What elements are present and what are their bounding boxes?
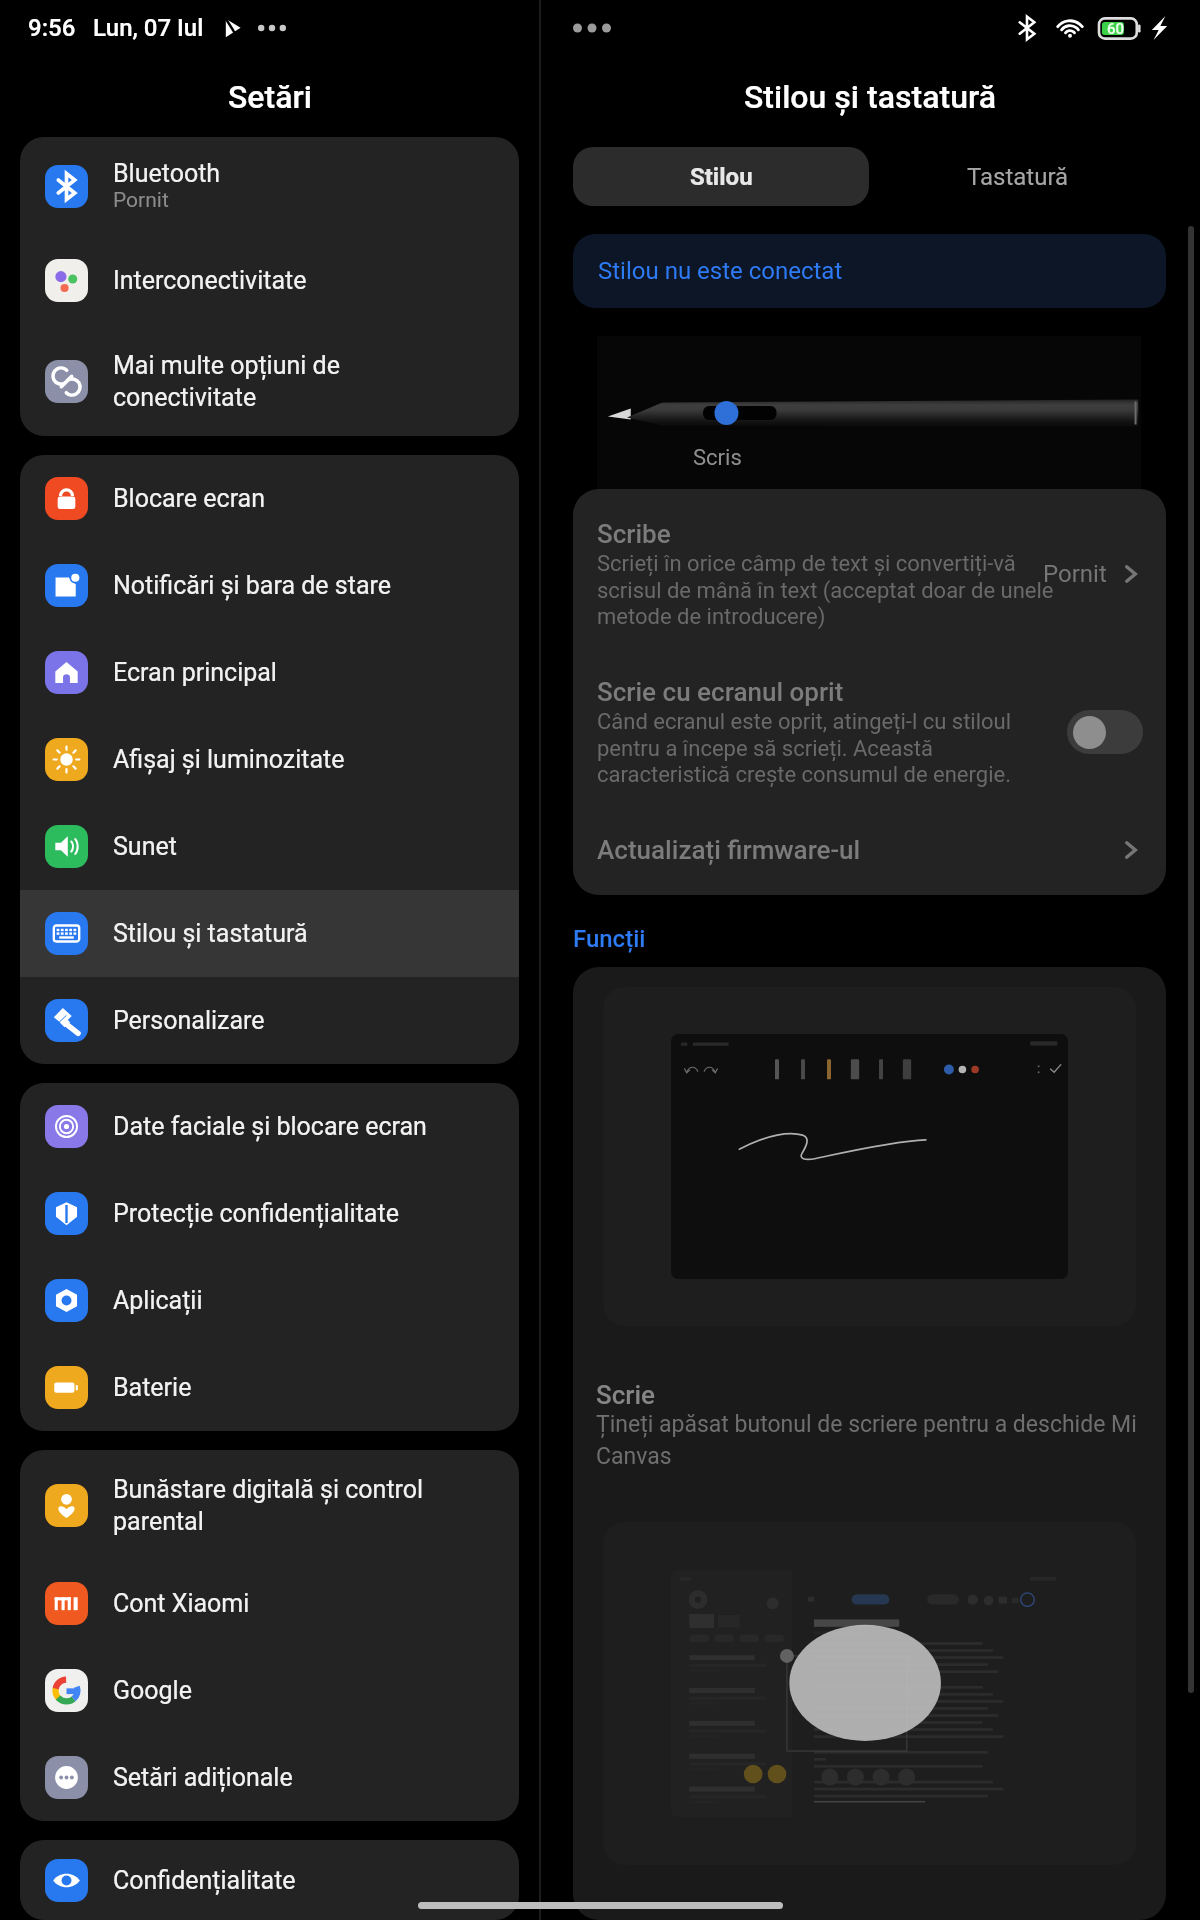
staticText: Scrieți în orice câmp de text și convert…: [597, 551, 1069, 629]
button[interactable]: Stilou nu este conectat: [573, 234, 1166, 308]
button[interactable]: Aplicații: [20, 1257, 519, 1344]
staticText: Afișaj și luminozitate: [113, 745, 345, 774]
staticText: Confidențialitate: [113, 1866, 296, 1895]
staticText: Scrie cu ecranul oprit: [597, 677, 844, 707]
staticText: Date faciale și blocare ecran: [113, 1112, 427, 1141]
staticText: Setări: [228, 78, 312, 116]
staticText: Aplicații: [113, 1286, 203, 1315]
staticText: Când ecranul este oprit, atingeți-l cu s…: [597, 709, 1069, 787]
staticText: Actualizați firmware-ul: [597, 835, 861, 865]
button[interactable]: Cont Xiaomi: [20, 1560, 519, 1647]
button[interactable]: Scrie cu ecranul oprit: [1067, 710, 1143, 754]
staticText: Blocare ecran: [113, 484, 266, 513]
staticText: Stilou și tastatură: [744, 78, 997, 116]
button[interactable]: Notificări și bara de stare: [20, 542, 519, 629]
button[interactable]: Tastatură: [869, 147, 1166, 206]
button[interactable]: Bluetooth: [20, 137, 519, 235]
button[interactable]: Bunăstare digitală și control parental: [20, 1450, 519, 1560]
staticText: Funcții: [573, 925, 646, 953]
staticText: Mai multe opțiuni de conectivitate: [113, 351, 340, 412]
button[interactable]: Stilou: [573, 147, 869, 206]
button[interactable]: Blocare ecran: [20, 455, 519, 542]
button[interactable]: Protecție confidențialitate: [20, 1170, 519, 1257]
button[interactable]: Confidențialitate: [20, 1840, 519, 1920]
staticText: Stilou: [690, 163, 753, 191]
staticText: Interconectivitate: [113, 266, 307, 295]
button[interactable]: Actualizați firmware-ul: [573, 811, 1166, 889]
button[interactable]: Google: [20, 1647, 519, 1734]
staticText: Cont Xiaomi: [113, 1589, 250, 1618]
button[interactable]: Setări adiționale: [20, 1734, 519, 1821]
button[interactable]: Interconectivitate: [20, 235, 519, 326]
staticText: Bluetooth: [113, 159, 221, 188]
button[interactable]: Scrie cu ecranul oprit: [573, 653, 1166, 811]
staticText: Scris: [693, 445, 742, 471]
staticText: Stilou nu este conectat: [598, 257, 843, 285]
staticText: Google: [113, 1676, 192, 1705]
staticText: Țineți apăsat butonul de scriere pentru …: [596, 1411, 1156, 1470]
button[interactable]: Afișaj și luminozitate: [20, 716, 519, 803]
button[interactable]: Sunet: [20, 803, 519, 890]
staticText: Setări adiționale: [113, 1763, 293, 1792]
button[interactable]: Ecran principal: [20, 629, 519, 716]
staticText: Pornit: [1043, 560, 1107, 588]
staticText: Bunăstare digitală și control parental: [113, 1475, 424, 1536]
button[interactable]: Baterie: [20, 1344, 519, 1431]
staticText: Scrie: [596, 1380, 656, 1410]
button[interactable]: Mai multe opțiuni de conectivitate: [20, 326, 519, 436]
staticText: Ecran principal: [113, 658, 277, 687]
staticText: Stilou și tastatură: [113, 919, 308, 948]
staticText: Sunet: [113, 832, 177, 861]
button[interactable]: Scribe: [573, 495, 1166, 653]
staticText: Lun, 07 Iul: [93, 14, 204, 42]
button[interactable]: Stilou și tastatură: [20, 890, 519, 977]
staticText: 9:56: [28, 14, 76, 42]
button[interactable]: Personalizare: [20, 977, 519, 1064]
staticText: Protecție confidențialitate: [113, 1199, 399, 1228]
staticText: Personalizare: [113, 1006, 265, 1035]
staticText: Pornit: [113, 188, 169, 213]
staticText: 60: [1107, 20, 1125, 38]
staticText: Tastatură: [967, 163, 1069, 191]
button[interactable]: Date faciale și blocare ecran: [20, 1083, 519, 1170]
staticText: Scribe: [597, 519, 671, 549]
staticText: Notificări și bara de stare: [113, 571, 391, 600]
staticText: Baterie: [113, 1373, 192, 1402]
